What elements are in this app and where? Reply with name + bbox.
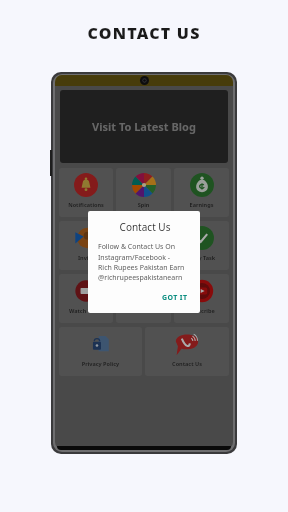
button[interactable]: Visit To Latest Blog xyxy=(60,90,228,163)
staticText: Wallet xyxy=(116,254,171,261)
button[interactable]: Earnings xyxy=(174,168,229,217)
button[interactable]: Watch Video xyxy=(59,274,113,323)
staticText: Contact Us xyxy=(98,220,192,234)
staticText: GOT IT xyxy=(162,293,188,303)
staticText: Daily Task xyxy=(174,254,229,261)
button[interactable]: Invite xyxy=(59,221,113,270)
staticText: CONTACT US xyxy=(87,22,201,44)
staticText: Notifications xyxy=(59,201,113,208)
staticText: Subscribe xyxy=(174,307,229,314)
staticText: Follow & Contact Us On Instagram/Faceboo… xyxy=(98,242,185,282)
button[interactable]: Subscribe xyxy=(174,274,229,323)
button[interactable]: Daily Task xyxy=(174,221,229,270)
button[interactable]: Spin xyxy=(116,168,171,217)
staticText: Privacy Policy xyxy=(59,360,142,367)
button[interactable]: Wallet xyxy=(116,221,171,270)
staticText: Contact Us xyxy=(145,360,229,367)
staticText: Visit To Latest Blog xyxy=(92,119,196,134)
button[interactable]: GOT IT xyxy=(158,291,192,305)
staticText: Earnings xyxy=(174,201,229,208)
button[interactable]: Notifications xyxy=(59,168,113,217)
button[interactable]: Contact Us xyxy=(145,327,229,376)
staticText: Invite xyxy=(59,254,113,261)
staticText: Rate Us xyxy=(116,307,171,314)
staticText: Watch Video xyxy=(59,307,113,314)
button[interactable]: Privacy Policy xyxy=(59,327,142,376)
button[interactable]: Rate Us xyxy=(116,274,171,323)
staticText: Spin xyxy=(116,201,171,208)
